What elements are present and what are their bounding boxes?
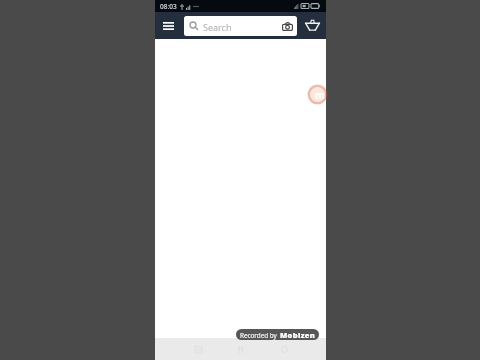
staticText: Recorded by xyxy=(240,331,277,340)
staticText: Mobizen xyxy=(280,330,316,340)
button[interactable]: Back xyxy=(229,338,253,360)
button[interactable]: Screen recorder xyxy=(307,84,328,105)
button[interactable]: Open navigation menu xyxy=(155,12,184,39)
button[interactable]: Shopping cart xyxy=(298,12,326,39)
button[interactable]: Home xyxy=(272,338,296,360)
staticText: Search xyxy=(203,21,232,33)
button[interactable]: Search with camera xyxy=(278,16,297,36)
staticText: 08:03 xyxy=(160,2,177,11)
button[interactable]: Search xyxy=(184,16,297,36)
staticText: m xyxy=(315,88,325,102)
